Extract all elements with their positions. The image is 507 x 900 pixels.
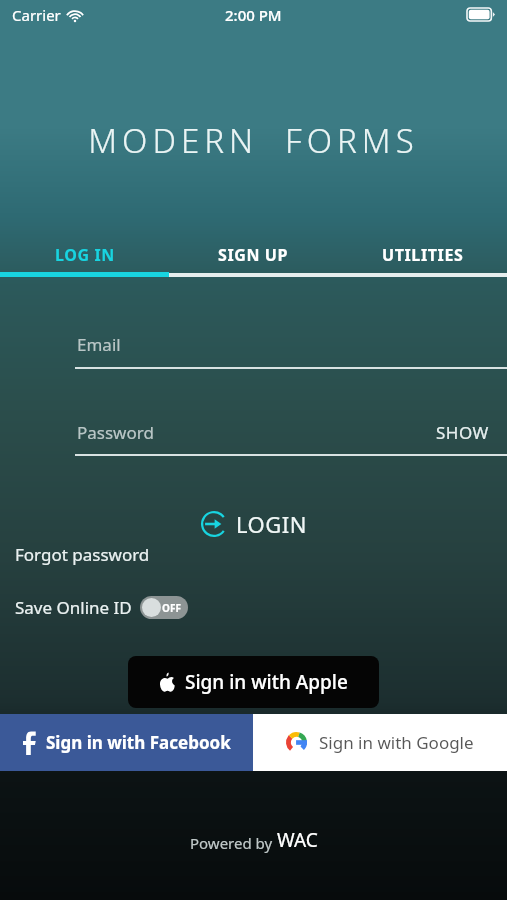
button[interactable]: LOG IN	[0, 238, 169, 272]
button[interactable]: UTILITIES	[338, 238, 507, 272]
staticText: 2:00 PM	[225, 5, 282, 25]
staticText: MODERN FORMS	[88, 118, 419, 163]
button[interactable]: Email	[0, 331, 507, 377]
staticText: UTILITIES	[382, 244, 464, 266]
staticText: Sign in with Google	[319, 731, 474, 754]
button[interactable]: Forgot password	[15, 540, 150, 569]
staticText: SIGN UP	[218, 244, 289, 266]
button[interactable]: Password	[0, 419, 507, 465]
button[interactable]: LOGIN	[191, 504, 317, 544]
button[interactable]: Sign in with Google	[253, 714, 507, 771]
staticText: Forgot password	[15, 543, 150, 566]
staticText: SHOW	[436, 421, 489, 444]
staticText: Email	[77, 333, 121, 356]
button[interactable]: SHOW	[434, 419, 491, 446]
button[interactable]: Sign in with Apple	[128, 656, 379, 708]
button[interactable]: SIGN UP	[169, 238, 338, 272]
staticText: Sign in with Facebook	[46, 731, 231, 754]
staticText: Carrier	[12, 5, 61, 25]
button[interactable]: Save Online ID toggle, off	[140, 596, 188, 619]
staticText: Sign in with Apple	[185, 669, 348, 695]
staticText: Save Online ID	[15, 596, 132, 619]
button[interactable]: Sign in with Facebook	[0, 714, 253, 771]
staticText: OFF	[162, 601, 181, 615]
staticText: Password	[77, 421, 154, 444]
staticText: LOGIN	[236, 509, 307, 539]
staticText: LOG IN	[55, 244, 115, 266]
staticText: Powered by	[190, 833, 277, 853]
staticText: WAC	[277, 827, 318, 853]
